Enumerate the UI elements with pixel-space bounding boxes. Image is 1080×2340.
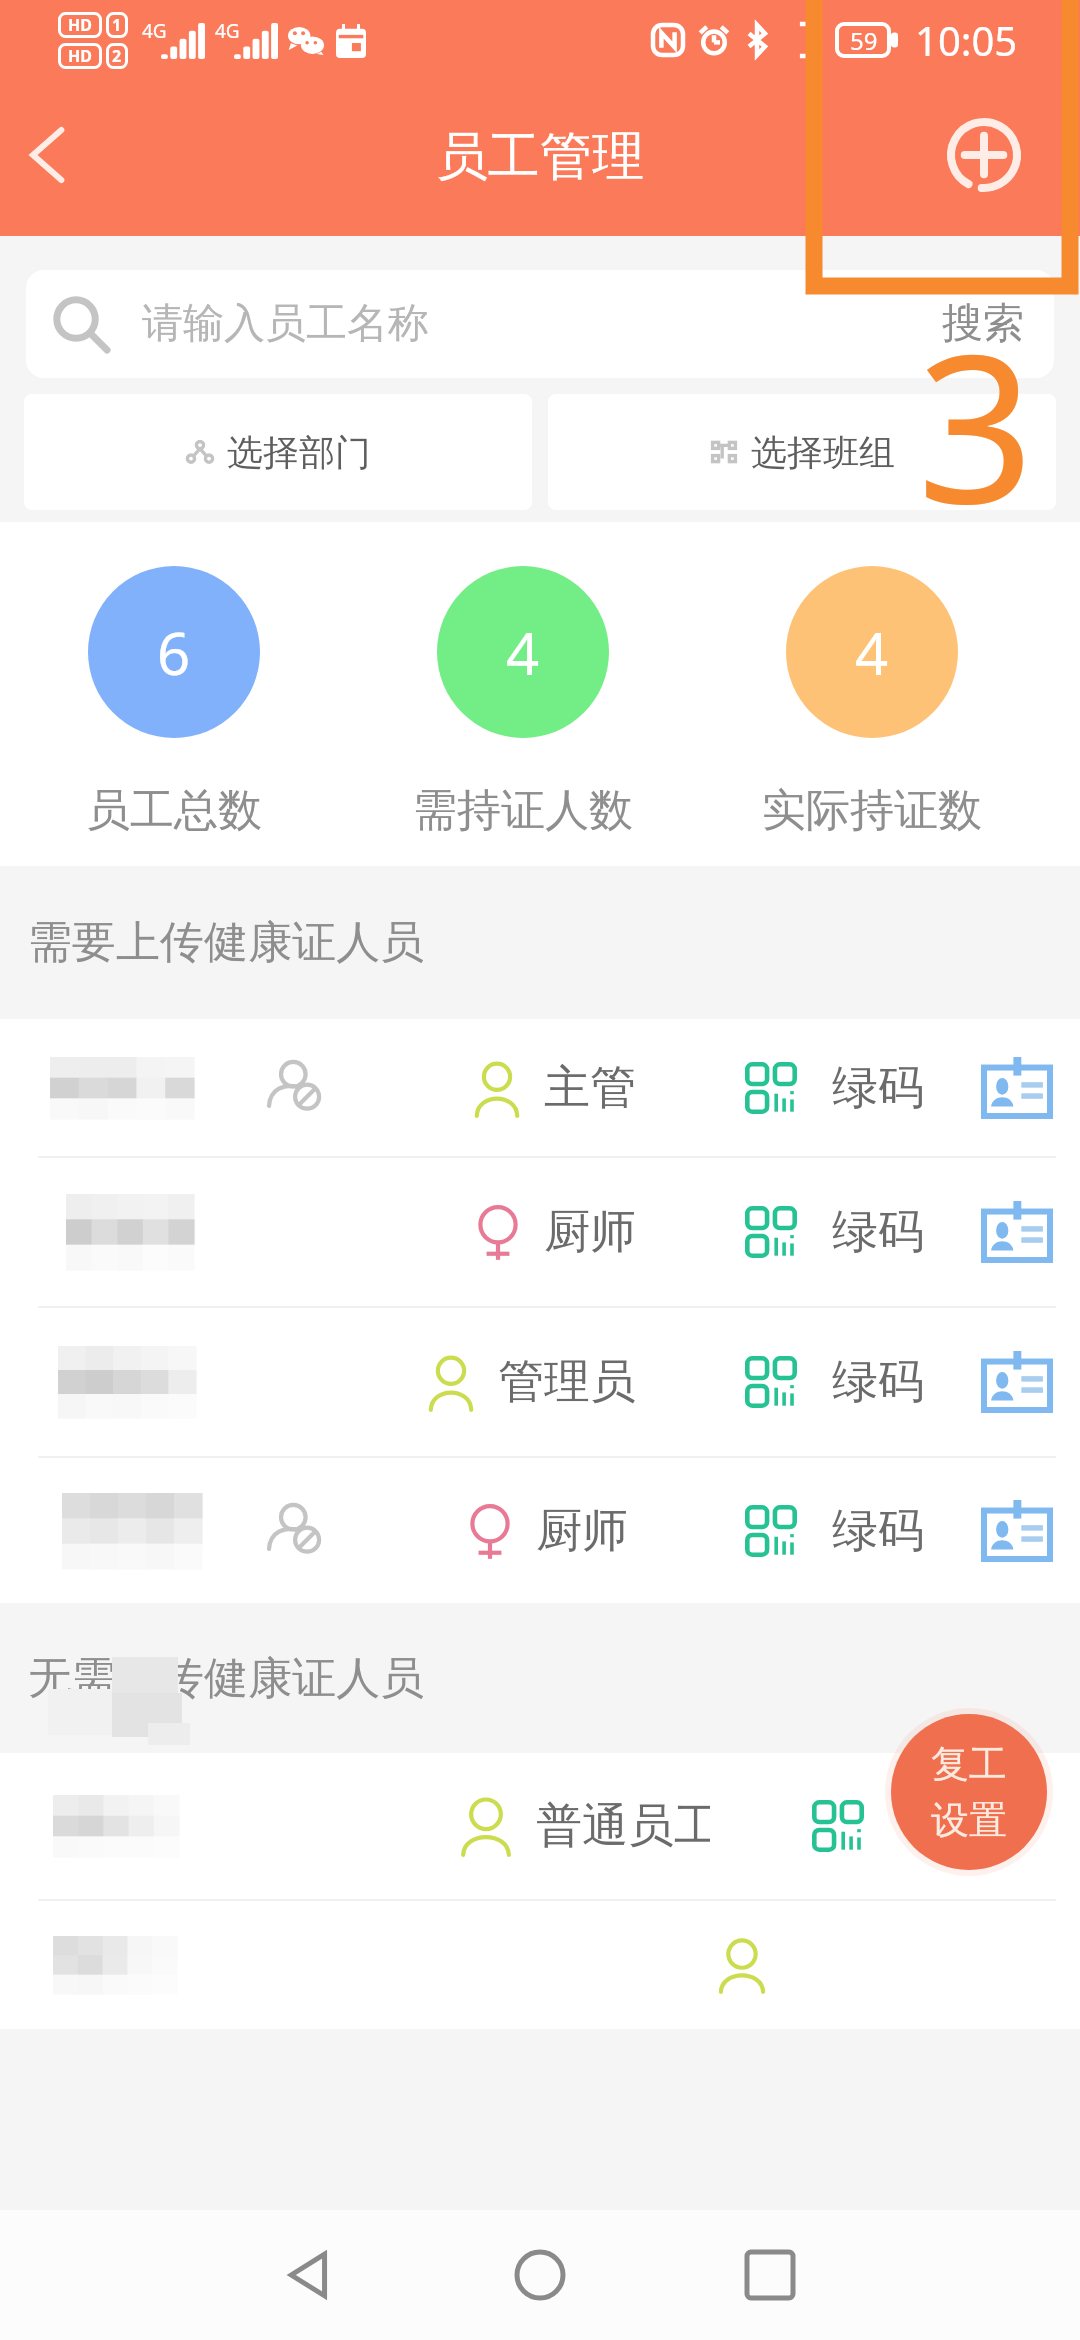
button[interactable]: 普通员工	[0, 1753, 1080, 1899]
staticText: 选择部门	[227, 430, 371, 475]
staticText: 普通员工	[536, 1797, 710, 1855]
staticText: 搜索	[942, 298, 1024, 350]
button[interactable]: 选择班组	[548, 394, 1056, 510]
staticText: 1	[112, 14, 122, 36]
button[interactable]: 6	[34, 522, 314, 866]
staticText: 无需上传健康证人员	[28, 1651, 424, 1706]
button[interactable]: 健康证	[981, 1351, 1053, 1413]
staticText: 实际持证数	[762, 783, 982, 838]
staticText: 绿码	[832, 1353, 924, 1411]
button[interactable]: 管理员	[0, 1308, 1080, 1456]
staticText: 选择班组	[751, 430, 895, 475]
staticText: 厨师	[536, 1502, 628, 1560]
button[interactable]: Recents	[715, 2220, 825, 2330]
button[interactable]: Back	[0, 107, 94, 203]
staticText: 需持证人数	[413, 783, 633, 838]
staticText: HD	[68, 14, 92, 36]
staticText: 管理员	[498, 1353, 636, 1411]
button[interactable]: 4	[732, 522, 1012, 866]
staticText: 厨师	[544, 1203, 636, 1261]
button[interactable]: 主管	[0, 1019, 1080, 1156]
button[interactable]: 请输入员工名称	[26, 270, 1054, 378]
staticText: 员工总数	[86, 783, 262, 838]
staticText: 6	[157, 613, 191, 692]
staticText: 设置	[931, 1796, 1007, 1844]
staticText: 请输入员工名称	[142, 298, 429, 350]
staticText: 绿码	[832, 1203, 924, 1261]
button[interactable]: 健康证	[981, 1201, 1053, 1263]
staticText: 4G	[215, 18, 240, 44]
staticText: 2	[112, 45, 122, 67]
button[interactable]: 选择部门	[24, 394, 532, 510]
button[interactable]: Add employee	[934, 105, 1034, 205]
button[interactable]: 复工设置	[891, 1714, 1047, 1870]
button[interactable]: 厨师	[0, 1158, 1080, 1306]
button[interactable]: 健康证	[981, 1057, 1053, 1119]
staticText: 4	[506, 613, 540, 692]
staticText: 10:05	[915, 13, 1018, 67]
staticText: 绿码	[832, 1502, 924, 1560]
button[interactable]: Back	[255, 2220, 365, 2330]
staticText: 4G	[142, 18, 167, 44]
button[interactable]: 健康证	[981, 1500, 1053, 1562]
button[interactable]	[0, 1901, 1080, 2029]
staticText: 复工	[931, 1740, 1007, 1788]
staticText: 3	[917, 284, 1035, 563]
staticText: 员工管理	[436, 124, 644, 190]
staticText: 主管	[544, 1059, 636, 1117]
staticText: HD	[68, 45, 92, 67]
staticText: 绿码	[832, 1059, 924, 1117]
button[interactable]: Home	[485, 2220, 595, 2330]
button[interactable]: 4	[383, 522, 663, 866]
staticText: 59	[850, 24, 878, 57]
staticText: 4	[855, 613, 889, 692]
button[interactable]: 厨师	[0, 1458, 1080, 1603]
staticText: 需要上传健康证人员	[28, 915, 424, 970]
